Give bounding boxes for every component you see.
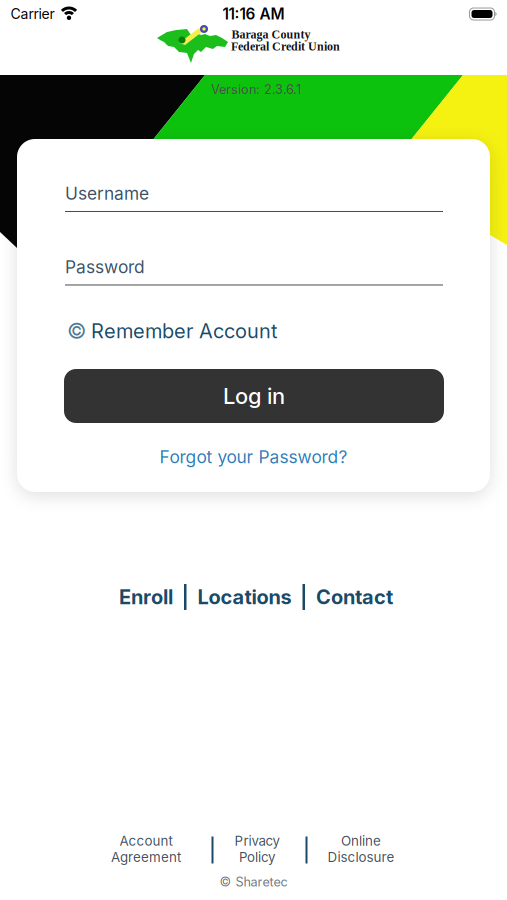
staticText: Policy [239,849,275,865]
staticText: Locations [197,585,291,609]
staticText: 11:16 AM [222,5,284,23]
staticText: Agreement [111,849,181,865]
staticText: © Sharetec [219,874,287,890]
staticText: © [67,318,86,344]
button[interactable]: Privacy [207,831,307,867]
button[interactable]: Forgot your Password? [159,446,347,467]
button[interactable]: Password [17,233,490,309]
staticText: Log in [223,383,285,409]
staticText: Account [119,833,172,849]
button[interactable]: © Sharetec [219,874,287,890]
button[interactable]: Log in [64,369,444,423]
button[interactable]: Online [311,831,411,867]
staticText: Privacy [234,833,279,849]
staticText: Online [341,833,381,849]
staticText: Contact [316,585,393,609]
button[interactable]: © [67,318,278,344]
button[interactable]: Account [96,831,196,867]
button[interactable]: Enroll [119,585,173,609]
staticText: Username [65,183,149,204]
staticText: Version: 2.3.6.1 [211,82,301,97]
button[interactable]: Locations [197,585,291,609]
staticText: Baraga County [231,28,310,41]
staticText: Federal Credit Union [231,40,340,53]
staticText: Password [65,256,145,277]
staticText: Enroll [119,585,173,609]
staticText: Carrier [10,5,54,22]
button[interactable]: Username [17,159,490,235]
staticText: Forgot your Password? [159,446,347,467]
button[interactable]: Contact [316,585,393,609]
staticText: Disclosure [327,849,394,865]
staticText: Remember Account [91,319,278,343]
